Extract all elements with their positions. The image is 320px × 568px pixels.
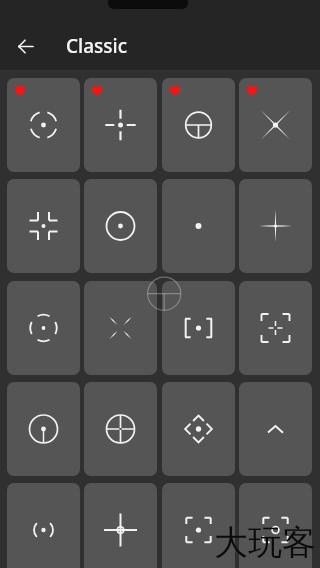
button[interactable]: Crosshair 2 xyxy=(84,78,157,172)
button[interactable]: Crosshair 20 xyxy=(239,483,312,568)
button[interactable]: Crosshair 5 xyxy=(7,179,80,273)
button[interactable]: Crosshair 15 xyxy=(162,382,235,476)
staticText: Classic xyxy=(66,33,127,59)
button[interactable]: Crosshair 9 xyxy=(7,281,80,375)
staticText: 大玩客 xyxy=(214,521,316,564)
button[interactable]: Crosshair 13 xyxy=(7,382,80,476)
button[interactable]: Crosshair 17 xyxy=(7,483,80,568)
button[interactable]: Crosshair 16 xyxy=(239,382,312,476)
button[interactable]: Crosshair 8 xyxy=(239,179,312,273)
button[interactable]: Crosshair 6 xyxy=(84,179,157,273)
button[interactable]: Crosshair 14 xyxy=(84,382,157,476)
button[interactable]: Crosshair 3 xyxy=(162,78,235,172)
button[interactable]: Crosshair 10 xyxy=(84,281,157,375)
button[interactable]: Crosshair 1 xyxy=(7,78,80,172)
button[interactable]: Crosshair 19 xyxy=(162,483,235,568)
button[interactable]: Crosshair 7 xyxy=(162,179,235,273)
button[interactable]: Back xyxy=(5,26,45,66)
button[interactable]: Crosshair 12 xyxy=(239,281,312,375)
button[interactable]: Crosshair 11 xyxy=(162,281,235,375)
button[interactable]: Crosshair 4 xyxy=(239,78,312,172)
button[interactable]: Crosshair 18 xyxy=(84,483,157,568)
